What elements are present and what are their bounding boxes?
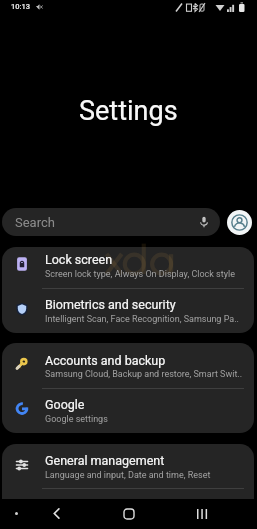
staticText: Search (15, 215, 55, 230)
button[interactable]: Account (227, 210, 252, 235)
staticText: Biometrics and security (45, 297, 176, 312)
button[interactable] (2, 444, 254, 488)
button[interactable] (2, 288, 254, 333)
button[interactable]: Back (46, 503, 67, 524)
button[interactable]: Recent apps (191, 503, 212, 524)
staticText: 10:13 (11, 2, 31, 11)
staticText: Lock screen (45, 252, 113, 267)
button[interactable] (2, 343, 254, 388)
button[interactable] (2, 247, 254, 288)
staticText: Language and input, Date and time, Reset (45, 470, 211, 481)
staticText: Google settings (45, 414, 108, 425)
staticText: Intelligent Scan, Face Recognition, Sams… (45, 314, 239, 325)
button[interactable]: Search (2, 208, 220, 236)
staticText: Screen lock type, Always On Display, Clo… (45, 269, 235, 280)
staticText: Samsung Cloud, Backup and restore, Smart… (45, 369, 243, 380)
button[interactable] (2, 388, 254, 433)
staticText: Settings (79, 95, 178, 127)
staticText: Google (45, 397, 85, 412)
staticText: Accounts and backup (45, 353, 166, 368)
staticText: General management (45, 453, 165, 468)
button[interactable]: Home (118, 503, 139, 524)
